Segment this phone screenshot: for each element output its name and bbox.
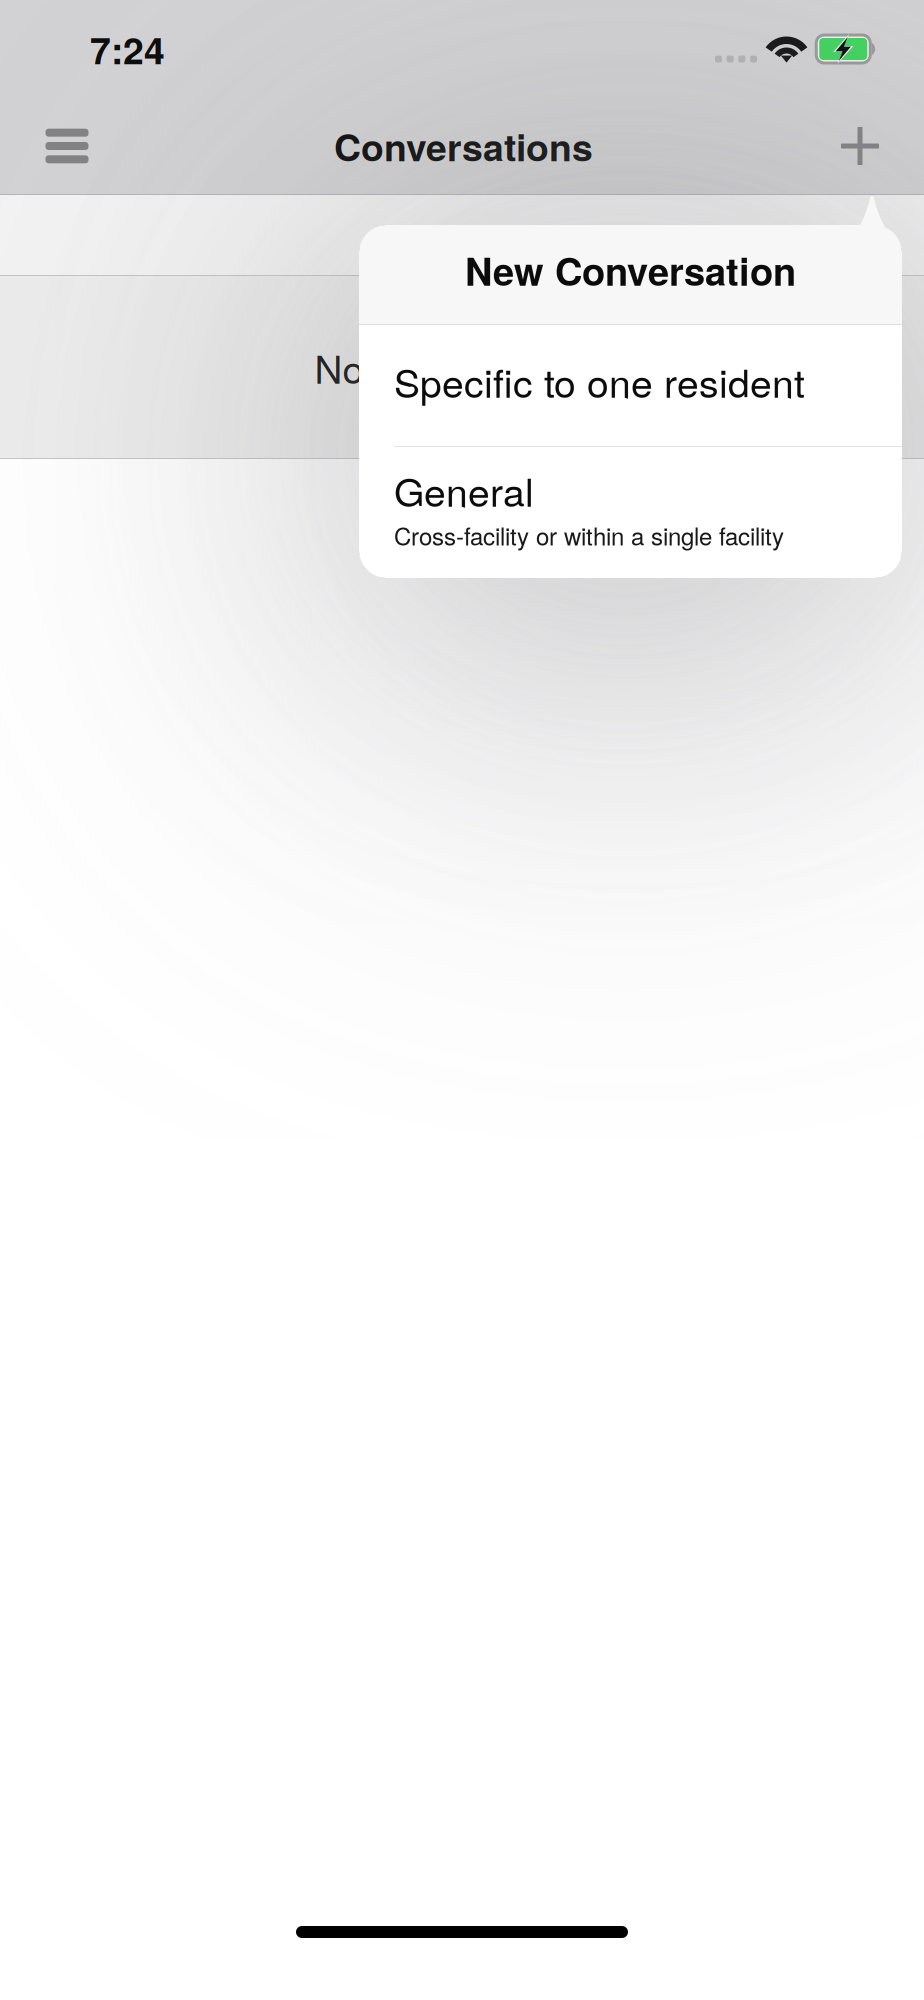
staticText: New Conversation bbox=[465, 243, 796, 297]
staticText: Specific to one resident bbox=[394, 353, 805, 409]
staticText: General bbox=[394, 462, 534, 518]
button[interactable]: General bbox=[359, 447, 902, 578]
staticText: Conversations bbox=[334, 119, 593, 173]
button[interactable]: New conversation bbox=[812, 98, 908, 194]
button[interactable]: Specific to one resident bbox=[359, 325, 902, 446]
staticText: Cross-facility or within a single facili… bbox=[394, 518, 784, 552]
staticText: 7:24 bbox=[90, 22, 165, 76]
staticText: No conversations bbox=[314, 339, 609, 395]
button[interactable]: Menu bbox=[19, 98, 115, 194]
